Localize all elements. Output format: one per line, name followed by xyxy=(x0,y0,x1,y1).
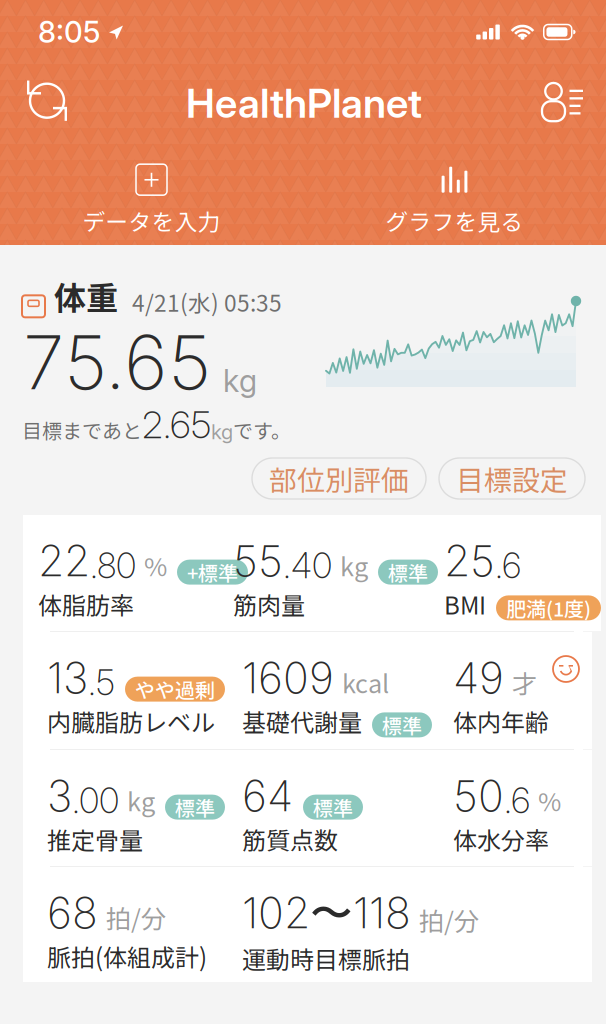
staticText: 標準 xyxy=(388,558,428,587)
staticText: 体重 xyxy=(54,273,118,319)
staticText: 部位別評価 xyxy=(269,458,409,499)
staticText: .80 xyxy=(90,545,136,587)
staticText: 22 xyxy=(38,535,90,587)
staticText: .5 xyxy=(88,662,115,704)
staticText: 75.65 xyxy=(23,317,211,407)
staticText: です。 xyxy=(233,415,291,444)
staticText: % xyxy=(144,547,167,584)
staticText: .00 xyxy=(72,780,119,822)
staticText: 8:05 xyxy=(38,14,100,50)
staticText: 標準 xyxy=(313,793,353,822)
staticText: 拍/分 xyxy=(106,899,166,936)
staticText: 標準 xyxy=(175,793,215,822)
staticText: 拍/分 xyxy=(419,901,479,938)
staticText: 内臓脂肪レベル xyxy=(47,704,215,738)
staticText: 2.65 xyxy=(142,402,211,447)
staticText: BMI xyxy=(444,587,486,621)
button[interactable]: データを入力 xyxy=(0,164,303,237)
staticText: 13 xyxy=(47,652,88,704)
button[interactable]: 部位別評価 xyxy=(252,458,426,499)
staticText: 体脂肪率 xyxy=(38,587,134,621)
staticText: % xyxy=(538,782,561,819)
staticText: 50 xyxy=(453,770,504,822)
staticText: 102〜118 xyxy=(242,887,411,941)
staticText: 体内年齢 xyxy=(453,704,549,738)
staticText: +標準 xyxy=(187,558,238,587)
staticText: 才 xyxy=(512,664,537,701)
staticText: 25 xyxy=(444,535,495,587)
staticText: 運動時目標脈拍 xyxy=(242,941,410,976)
staticText: やや過剰 xyxy=(135,675,215,704)
staticText: 1609 xyxy=(242,652,334,704)
staticText: kg xyxy=(127,782,155,819)
staticText: 49 xyxy=(453,652,504,704)
staticText: 3 xyxy=(47,770,72,822)
staticText: 68 xyxy=(47,887,98,939)
staticText: データを入力 xyxy=(82,204,220,237)
staticText: .6 xyxy=(504,780,530,822)
button[interactable]: グラフを見る xyxy=(303,164,606,237)
staticText: .6 xyxy=(495,545,521,587)
staticText: 64 xyxy=(242,770,293,822)
staticText: kg xyxy=(340,547,368,584)
staticText: 目標設定 xyxy=(456,458,568,499)
button[interactable]: Refresh xyxy=(25,79,70,124)
staticText: kg xyxy=(223,362,257,399)
staticText: 55 xyxy=(233,535,283,587)
staticText: 4/21(水) 05:35 xyxy=(132,285,282,318)
staticText: .40 xyxy=(283,545,332,587)
staticText: kcal xyxy=(342,664,389,701)
button[interactable]: Profile xyxy=(538,78,584,124)
staticText: グラフを見る xyxy=(385,204,523,237)
staticText: 推定骨量 xyxy=(47,822,143,856)
staticText: 筋肉量 xyxy=(233,587,305,621)
staticText: 筋質点数 xyxy=(242,822,338,856)
staticText: 目標まであと xyxy=(22,415,142,444)
staticText: kg xyxy=(211,420,233,444)
staticText: 基礎代謝量 xyxy=(242,704,362,738)
staticText: 体水分率 xyxy=(453,822,549,856)
staticText: 脈拍(体組成計) xyxy=(47,939,207,973)
staticText: HealthPlanet xyxy=(186,79,422,127)
staticText: 標準 xyxy=(382,710,422,739)
staticText: 肥満(1度) xyxy=(506,593,591,622)
button[interactable]: 目標設定 xyxy=(439,458,585,499)
